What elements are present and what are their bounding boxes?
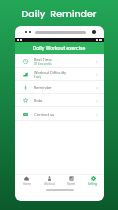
staticText: Workout Difficulty [34,70,67,75]
staticText: Workout [44,182,55,186]
staticText: Daily Reminder [21,7,97,20]
staticText: Report [67,182,76,186]
button[interactable]: Rest Time [15,55,104,68]
button[interactable]: Reminder [15,81,104,94]
button[interactable]: Workout [38,175,60,186]
staticText: Easy [34,75,42,79]
button[interactable]: Contact us [15,108,104,121]
button[interactable]: Rate [15,94,104,107]
staticText: Rate [34,98,43,103]
staticText: Daily Workout exercise [33,45,86,51]
button[interactable]: Setting [82,175,104,186]
button[interactable]: Workout Difficulty [15,68,104,81]
staticText: 10 Seconds [34,62,52,66]
staticText: Reminder [34,85,52,90]
button[interactable]: Report [60,175,82,186]
staticText: Home [23,182,31,186]
staticText: Rest Time [34,57,52,62]
staticText: Setting [88,182,98,186]
staticText: Contact us [34,112,55,117]
button[interactable]: Home [15,175,38,186]
